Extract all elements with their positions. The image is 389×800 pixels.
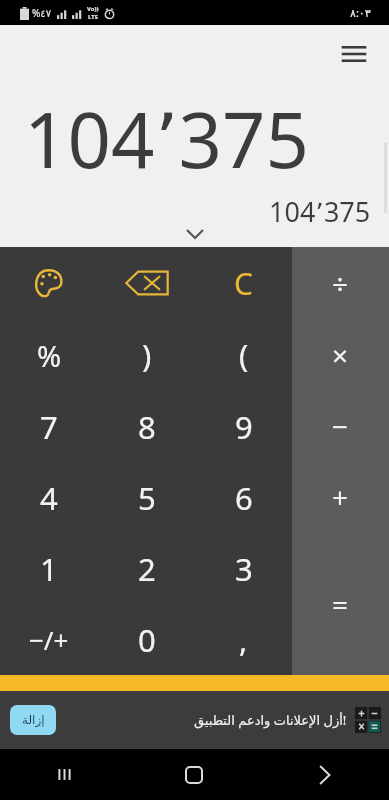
button[interactable]: % bbox=[0, 319, 98, 391]
staticText: 9 bbox=[235, 406, 253, 448]
staticText: 6 bbox=[235, 477, 253, 519]
staticText: 8 bbox=[138, 406, 156, 448]
button[interactable]: 1 bbox=[0, 533, 98, 604]
staticText: , bbox=[239, 619, 248, 661]
button[interactable]: Theme bbox=[0, 247, 98, 319]
button[interactable]: ( bbox=[195, 319, 292, 391]
staticText: ( bbox=[239, 334, 249, 376]
staticText: %٤٧ bbox=[32, 6, 52, 20]
button[interactable]: Back bbox=[259, 749, 389, 800]
button[interactable]: 8 bbox=[98, 391, 195, 462]
staticText: + bbox=[332, 478, 349, 516]
button[interactable]: 2 bbox=[98, 533, 195, 604]
staticText: 0 bbox=[138, 619, 156, 661]
button[interactable]: Recents bbox=[0, 749, 129, 800]
button[interactable]: ÷ bbox=[292, 247, 389, 319]
button[interactable]: 0 bbox=[98, 604, 195, 675]
staticText: LTE bbox=[88, 13, 99, 21]
button[interactable]: ) bbox=[98, 319, 195, 391]
staticText: ÷ bbox=[332, 264, 349, 302]
button[interactable]: , bbox=[195, 604, 292, 675]
staticText: % bbox=[37, 336, 62, 375]
staticText: ٨:٠٣ bbox=[350, 5, 371, 20]
staticText: 7 bbox=[40, 406, 58, 448]
button[interactable]: 9 bbox=[195, 391, 292, 462]
staticText: 104٬375 bbox=[269, 193, 371, 230]
button[interactable]: Expand history bbox=[178, 225, 212, 243]
button[interactable]: 4 bbox=[0, 462, 98, 533]
button[interactable]: 5 bbox=[98, 462, 195, 533]
staticText: × bbox=[332, 336, 349, 374]
button[interactable]: 7 bbox=[0, 391, 98, 462]
button[interactable]: إزالة bbox=[0, 691, 389, 749]
staticText: ) bbox=[142, 334, 152, 376]
button[interactable]: Backspace bbox=[98, 247, 195, 319]
staticText: 4 bbox=[40, 477, 58, 519]
button[interactable]: إزالة bbox=[10, 705, 56, 735]
staticText: أزل الإعلانات وادعم التطبيق! bbox=[194, 711, 347, 729]
staticText: C bbox=[234, 263, 253, 304]
button[interactable]: − bbox=[292, 390, 389, 461]
staticText: 104٬375 bbox=[24, 87, 389, 191]
button[interactable]: 6 bbox=[195, 462, 292, 533]
staticText: Vo)) bbox=[87, 5, 99, 13]
staticText: −/+ bbox=[29, 622, 69, 657]
button[interactable]: × bbox=[292, 319, 389, 390]
staticText: 1 bbox=[40, 548, 58, 590]
button[interactable]: 3 bbox=[195, 533, 292, 604]
button[interactable]: = bbox=[292, 532, 389, 675]
button[interactable]: −/+ bbox=[0, 604, 98, 675]
button[interactable]: Home bbox=[129, 749, 259, 800]
staticText: 2 bbox=[138, 548, 156, 590]
button[interactable]: C bbox=[195, 247, 292, 319]
button[interactable]: Menu bbox=[339, 39, 369, 69]
staticText: 5 bbox=[138, 477, 156, 519]
button[interactable]: + bbox=[292, 461, 389, 532]
staticText: إزالة bbox=[22, 713, 45, 727]
staticText: 3 bbox=[235, 548, 253, 590]
staticText: = bbox=[332, 585, 349, 623]
staticText: − bbox=[332, 407, 349, 445]
